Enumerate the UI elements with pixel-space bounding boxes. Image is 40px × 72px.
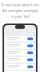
staticText: Draw inspiration from: [0, 2, 39, 7]
button[interactable]: [5, 43, 35, 49]
button[interactable]: [5, 64, 35, 70]
staticText: in your text: [10, 14, 29, 19]
staticText: the samples and type: [2, 8, 38, 13]
button[interactable]: [5, 50, 35, 56]
button[interactable]: [5, 57, 35, 63]
button[interactable]: [5, 36, 35, 42]
